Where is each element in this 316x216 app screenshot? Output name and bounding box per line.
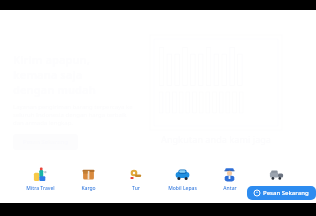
button[interactable]: Tur — [114, 161, 156, 203]
button[interactable]: Mitra Travel — [19, 161, 62, 203]
button[interactable]: Antar — [208, 161, 250, 203]
staticText: Kargo — [81, 185, 96, 192]
button[interactable]: Pesan Sekarang — [247, 186, 316, 200]
staticText: Transport — [264, 185, 288, 192]
staticText: Antar — [223, 185, 237, 192]
button[interactable]: Mobil Lepas — [161, 161, 203, 203]
staticText: Pesan Sekarang — [263, 189, 309, 197]
button[interactable]: Transport — [255, 161, 297, 203]
button[interactable]: Kargo — [67, 161, 109, 203]
staticText: Mobil Lepas — [168, 185, 197, 192]
staticText: Tur — [132, 185, 140, 192]
staticText: Mitra Travel — [26, 185, 55, 192]
